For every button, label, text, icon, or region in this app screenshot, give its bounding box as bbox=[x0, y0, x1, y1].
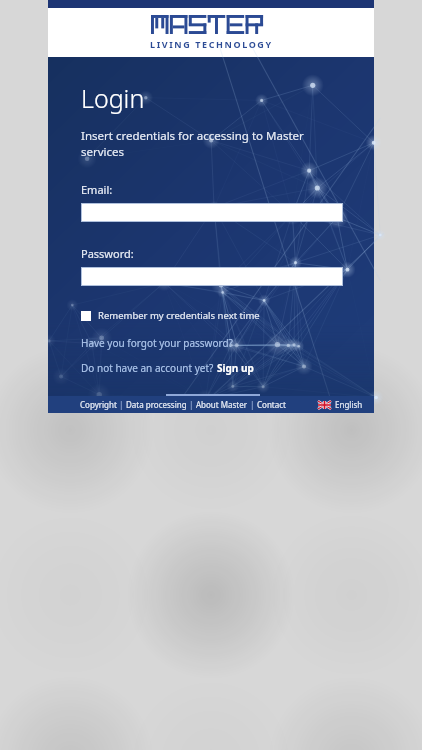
staticText: Do not have an account yet? bbox=[81, 361, 217, 375]
staticText: LIVING TECHNOLOGY bbox=[150, 38, 273, 50]
staticText: Have you forgot your password? bbox=[81, 336, 233, 350]
staticText: Sign up bbox=[217, 361, 254, 375]
staticText: English bbox=[335, 399, 363, 410]
button[interactable]: Have you forgot your password? bbox=[81, 336, 233, 350]
staticText: | bbox=[248, 399, 257, 410]
staticText: Data processing bbox=[126, 399, 187, 410]
button[interactable]: Remember my credentials next time bbox=[81, 309, 260, 322]
button[interactable] bbox=[81, 267, 343, 286]
staticText: About Master bbox=[196, 399, 248, 410]
staticText: Copyright bbox=[80, 399, 117, 410]
staticText: Password: bbox=[81, 246, 134, 261]
staticText: | bbox=[187, 399, 196, 410]
staticText: Insert credentials for accessing to Mast… bbox=[81, 128, 343, 160]
staticText: Email: bbox=[81, 182, 113, 197]
staticText: Remember my credentials next time bbox=[98, 309, 260, 322]
staticText: Login bbox=[81, 81, 145, 115]
button[interactable]: Data processing bbox=[126, 399, 187, 410]
button[interactable]: Sign up bbox=[217, 361, 254, 375]
staticText: Contact bbox=[257, 399, 286, 410]
button[interactable]: Copyright bbox=[80, 399, 117, 410]
button[interactable]: Contact bbox=[257, 399, 286, 410]
button[interactable]: Change language: English bbox=[318, 399, 363, 410]
button[interactable] bbox=[81, 203, 343, 222]
staticText: | bbox=[117, 399, 126, 410]
button[interactable]: About Master bbox=[196, 399, 248, 410]
